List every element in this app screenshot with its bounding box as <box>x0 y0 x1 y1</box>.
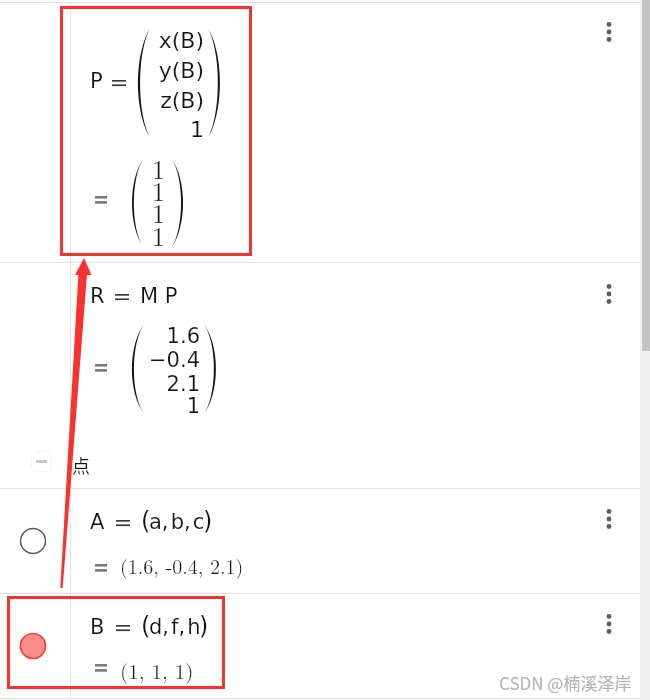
staticText: y(B) <box>94 58 204 84</box>
staticText: 1 <box>55 172 165 209</box>
staticText: −0.4 <box>90 348 200 372</box>
staticText: z(B) <box>94 88 204 114</box>
button[interactable]: More options <box>592 277 626 311</box>
button[interactable]: More options <box>592 607 626 641</box>
staticText: M P <box>140 284 178 308</box>
staticText: 1 <box>94 117 204 143</box>
staticText: d, f, h <box>149 615 201 639</box>
button[interactable]: Toggle visibility of object B <box>19 632 47 660</box>
staticText: 1 <box>55 150 165 187</box>
staticText: CSDN @楠溪泽岸 <box>499 670 632 695</box>
staticText: x(B) <box>94 28 204 54</box>
staticText: ) <box>199 612 209 640</box>
staticText: (1.6, -0.4, 2.1) <box>120 551 244 579</box>
button[interactable]: More options <box>592 15 626 49</box>
staticText: 点 <box>72 452 90 478</box>
staticText: A <box>90 510 105 534</box>
staticText: (1, 1, 1) <box>120 655 194 685</box>
staticText: 1 <box>55 217 165 254</box>
staticText: ) <box>203 507 213 535</box>
staticText: a, b, c <box>149 510 205 534</box>
staticText: ( <box>141 612 149 640</box>
button[interactable]: More options <box>592 502 626 536</box>
staticText: ( <box>141 507 149 535</box>
staticText: R <box>90 284 105 308</box>
staticText: 1.6 <box>90 324 200 348</box>
staticText: P <box>90 69 103 93</box>
button[interactable]: Toggle visibility of object A <box>19 527 47 555</box>
staticText: 1 <box>90 394 200 418</box>
staticText: B <box>90 615 105 639</box>
staticText: 2.1 <box>90 372 200 396</box>
button[interactable]: Collapse point group <box>31 451 52 472</box>
staticText: 1 <box>55 194 165 231</box>
